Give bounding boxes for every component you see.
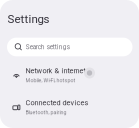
staticText: Connected devices xyxy=(26,98,89,107)
staticText: Search settings xyxy=(26,43,70,51)
button[interactable]: Connected devices xyxy=(0,92,139,124)
staticText: Network & internet xyxy=(26,66,86,75)
button[interactable]: Network & internet xyxy=(0,60,139,92)
staticText: Mobile, Wi-Fi, hotspot xyxy=(26,77,76,84)
button[interactable]: Search settings xyxy=(7,38,132,56)
staticText: Bluetooth, pairing xyxy=(26,109,67,116)
staticText: Settings xyxy=(7,12,49,26)
